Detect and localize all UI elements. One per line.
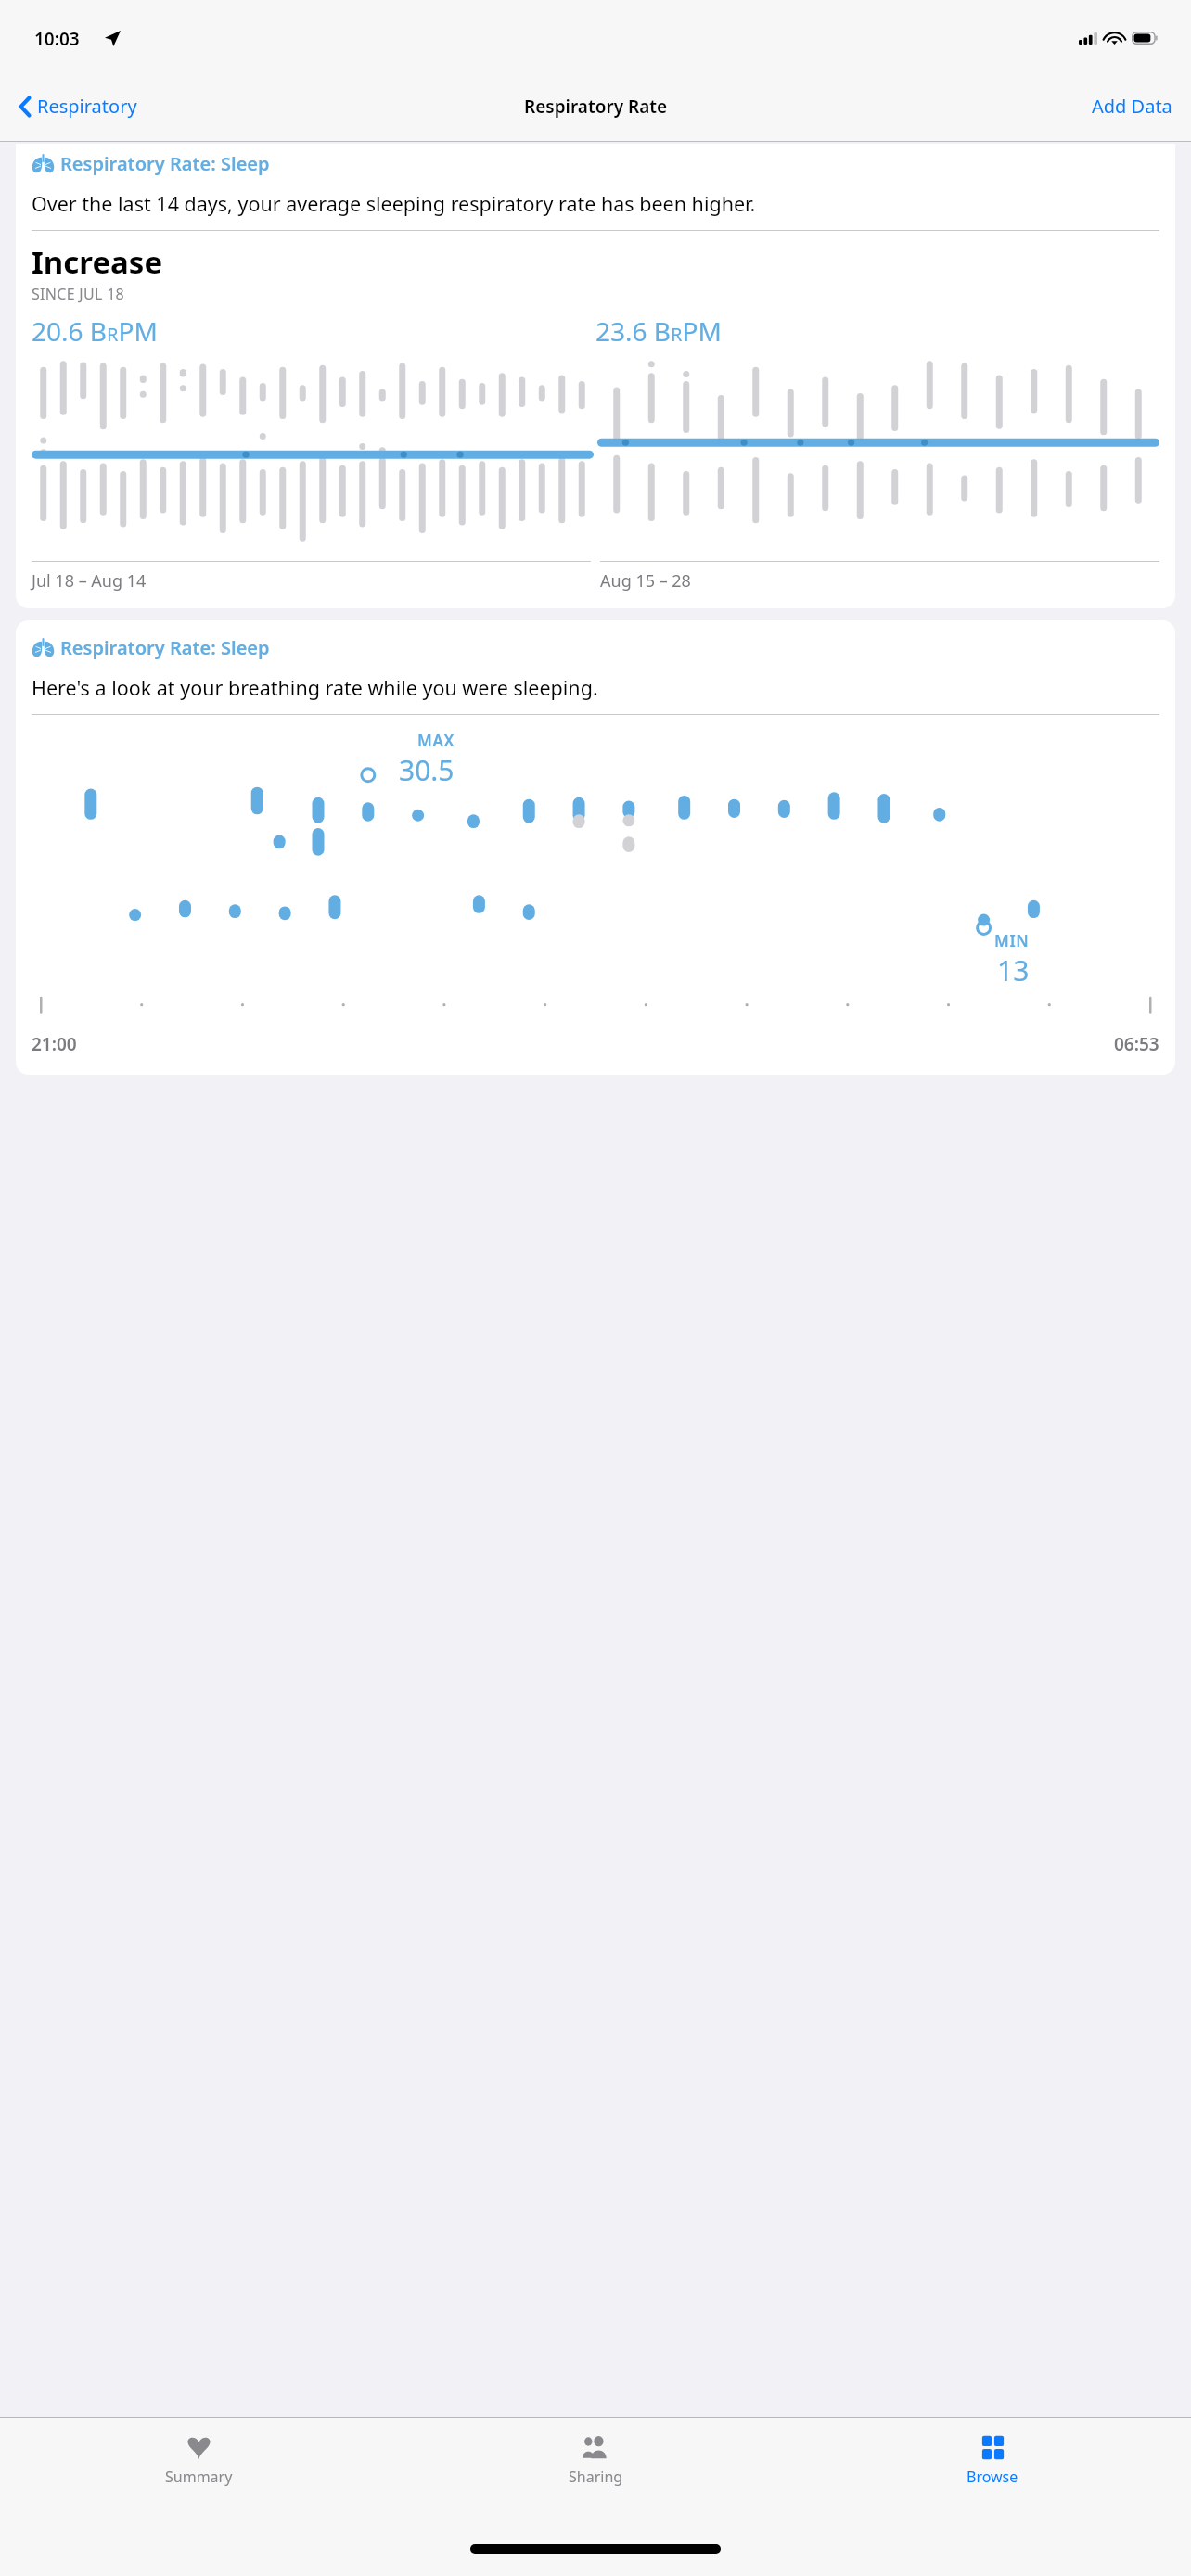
- staticText: Aug 15 – 28: [600, 569, 691, 593]
- staticText: 23.6 BRPM: [595, 313, 722, 349]
- staticText: Increase: [32, 241, 163, 283]
- button[interactable]: Respiratory Rate: Sleep: [16, 620, 1175, 1075]
- staticText: MIN: [994, 930, 1030, 951]
- staticText: Respiratory Rate: Sleep: [60, 635, 270, 660]
- button[interactable]: Respiratory: [0, 88, 147, 124]
- staticText: Sharing: [569, 2467, 623, 2487]
- staticText: 10:03: [34, 27, 80, 51]
- button[interactable]: Summary: [0, 2428, 397, 2493]
- staticText: Summary: [165, 2467, 233, 2487]
- staticText: 20.6 BRPM: [32, 313, 158, 349]
- staticText: MAX: [417, 730, 455, 751]
- staticText: 30.5: [399, 751, 455, 789]
- staticText: Browse: [967, 2467, 1018, 2487]
- button[interactable]: Respiratory Rate: Sleep: [16, 144, 1175, 608]
- staticText: SINCE JUL 18: [32, 284, 125, 304]
- staticText: Jul 18 – Aug 14: [32, 569, 147, 593]
- staticText: 06:53: [1114, 1032, 1159, 1056]
- staticText: Respiratory Rate: Sleep: [60, 151, 270, 176]
- staticText: 13: [997, 951, 1030, 989]
- staticText: Add Data: [1092, 94, 1172, 119]
- button[interactable]: Sharing: [397, 2428, 794, 2493]
- staticText: 21:00: [32, 1032, 77, 1056]
- staticText: Here's a look at your breathing rate whi…: [32, 674, 598, 701]
- staticText: Respiratory Rate: [524, 95, 668, 119]
- staticText: Over the last 14 days, your average slee…: [32, 190, 756, 217]
- button[interactable]: Browse: [794, 2428, 1191, 2493]
- staticText: Respiratory: [37, 94, 137, 119]
- button[interactable]: Add Data: [1073, 86, 1191, 126]
